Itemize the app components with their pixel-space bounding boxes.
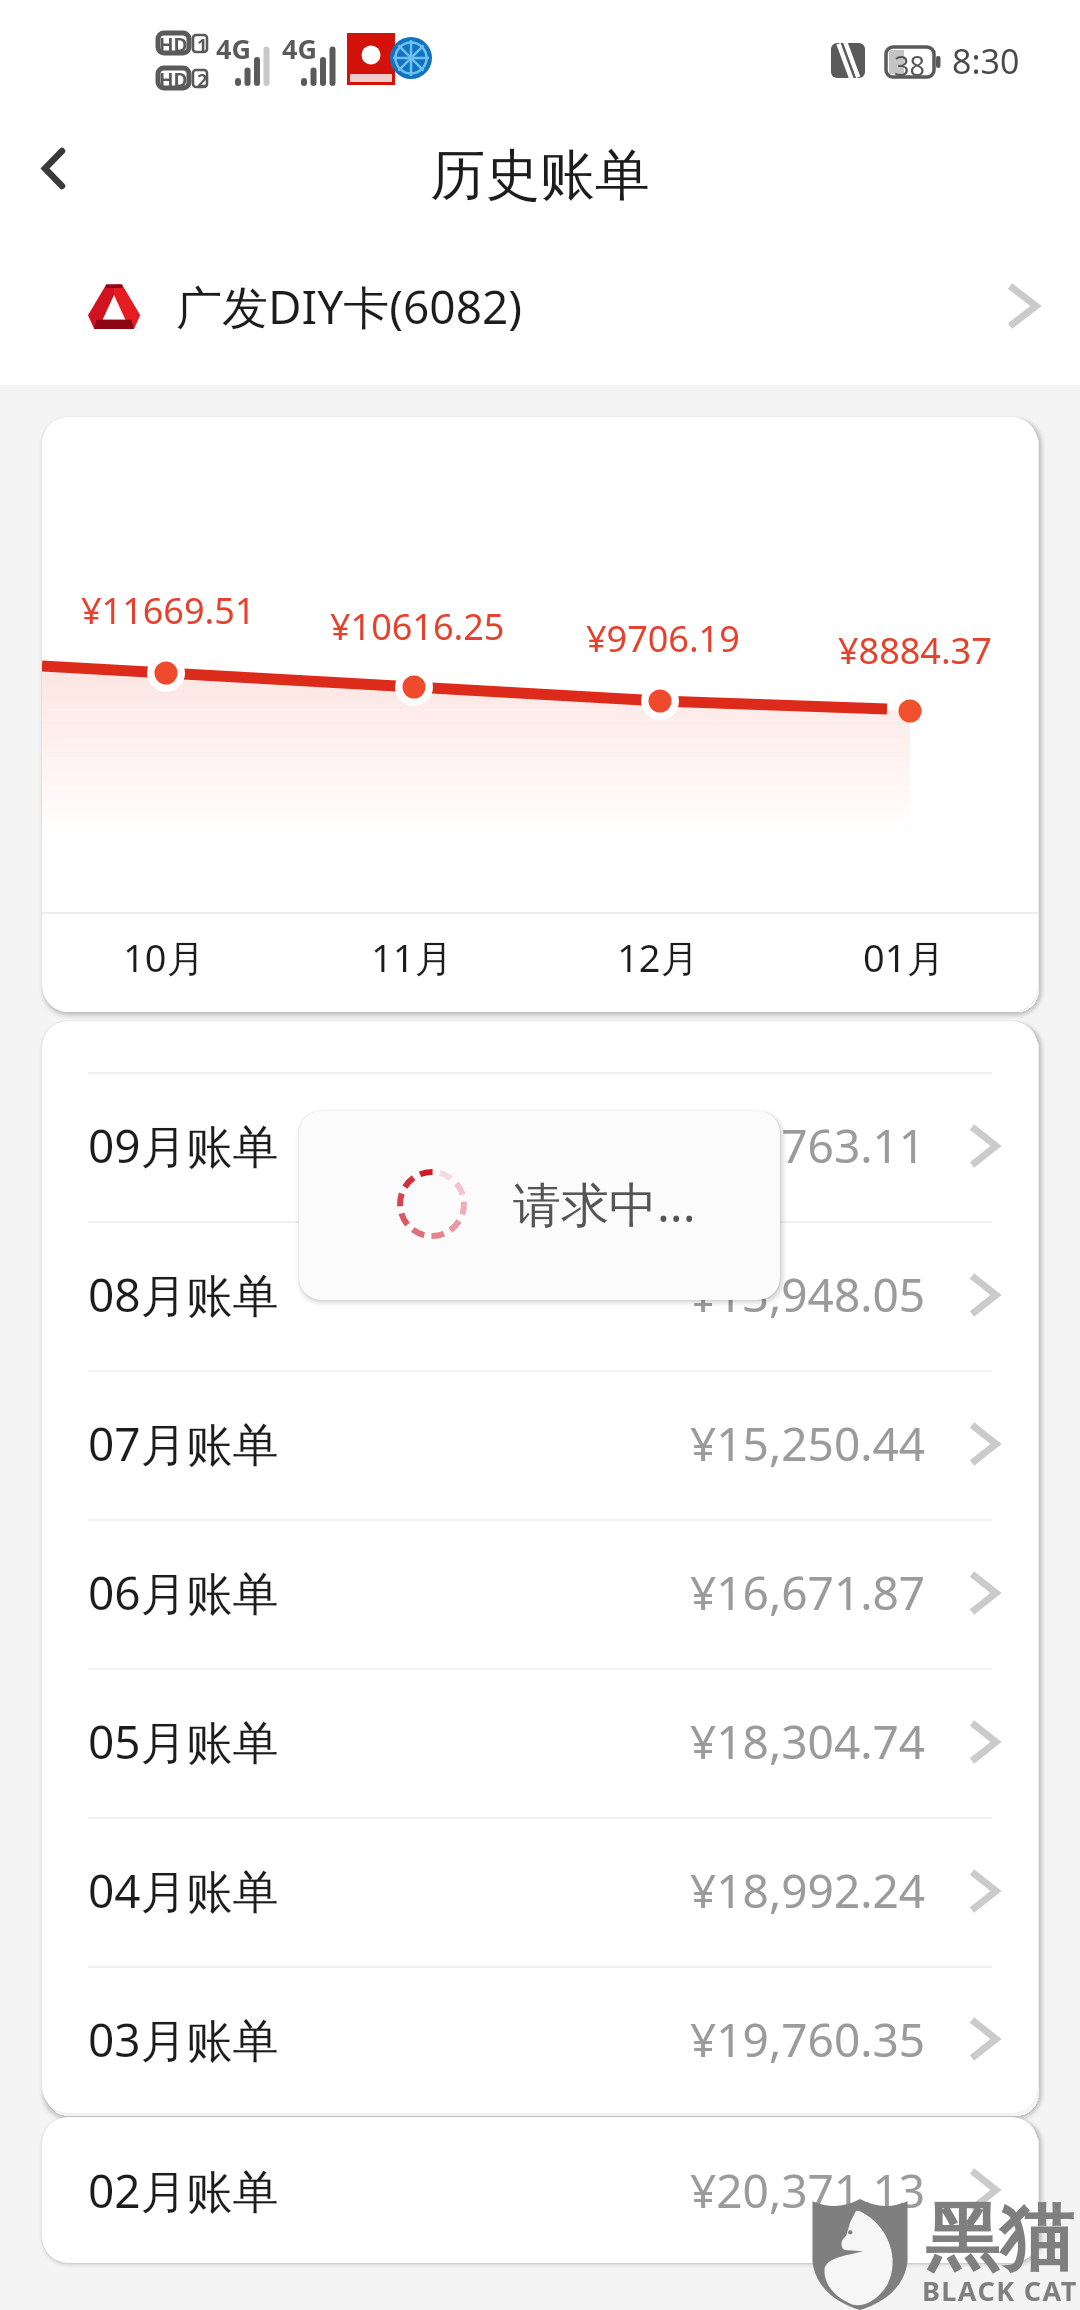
staticText: 38: [894, 47, 925, 84]
button[interactable]: 04月账单: [42, 1816, 1038, 1965]
staticText: 07月账单: [88, 1412, 279, 1475]
button[interactable]: 08月账单: [42, 1220, 1038, 1369]
staticText: 1: [197, 33, 208, 58]
button[interactable]: 03月账单: [42, 1965, 1038, 2113]
staticText: 4G: [216, 30, 251, 67]
staticText: 05月账单: [88, 1710, 279, 1773]
staticText: 4G: [282, 30, 317, 67]
staticText: 2: [197, 68, 208, 93]
staticText: ¥16,671.87: [690, 1561, 926, 1624]
staticText: 8:30: [952, 38, 1020, 84]
staticText: 06月账单: [88, 1561, 279, 1624]
staticText: 08月账单: [88, 1263, 279, 1326]
staticText: 12月: [617, 931, 699, 983]
button[interactable]: 05月账单: [42, 1667, 1038, 1816]
staticText: 广发DIY卡(6082): [176, 275, 523, 338]
button[interactable]: Back: [5, 120, 101, 216]
staticText: ¥8884.37: [838, 626, 992, 675]
staticText: ¥18,992.24: [690, 1859, 926, 1922]
button[interactable]: 06月账单: [42, 1518, 1038, 1667]
staticText: 02月账单: [88, 2159, 279, 2222]
button[interactable]: 广发DIY卡(6082): [0, 241, 1080, 371]
button[interactable]: 02月账单: [42, 2117, 1038, 2263]
staticText: ¥19,760.35: [690, 2008, 926, 2071]
staticText: BLACK CAT: [922, 2272, 1078, 2309]
button[interactable]: 07月账单: [42, 1369, 1038, 1518]
staticText: 历史账单: [430, 141, 650, 210]
staticText: ¥20,371.13: [690, 2159, 926, 2222]
staticText: 03月账单: [88, 2008, 279, 2071]
staticText: 请求中...: [513, 1171, 696, 1237]
staticText: 01月: [863, 931, 945, 983]
staticText: ¥11669.51: [81, 586, 256, 635]
button[interactable]: 09月账单: [42, 1071, 1038, 1220]
staticText: ¥15,250.44: [690, 1412, 926, 1475]
staticText: ¥12,763.11: [690, 1114, 926, 1177]
staticText: 04月账单: [88, 1859, 279, 1922]
staticText: ¥10616.25: [330, 602, 505, 651]
staticText: ¥18,304.74: [690, 1710, 926, 1773]
staticText: 09月账单: [88, 1114, 279, 1177]
staticText: ¥13,948.05: [690, 1263, 926, 1326]
staticText: 黑猫: [925, 2192, 1073, 2285]
staticText: ¥9706.19: [586, 614, 740, 663]
staticText: 11月: [371, 931, 453, 983]
staticText: HD: [159, 67, 188, 93]
staticText: 10月: [123, 931, 205, 983]
staticText: HD: [159, 32, 188, 58]
